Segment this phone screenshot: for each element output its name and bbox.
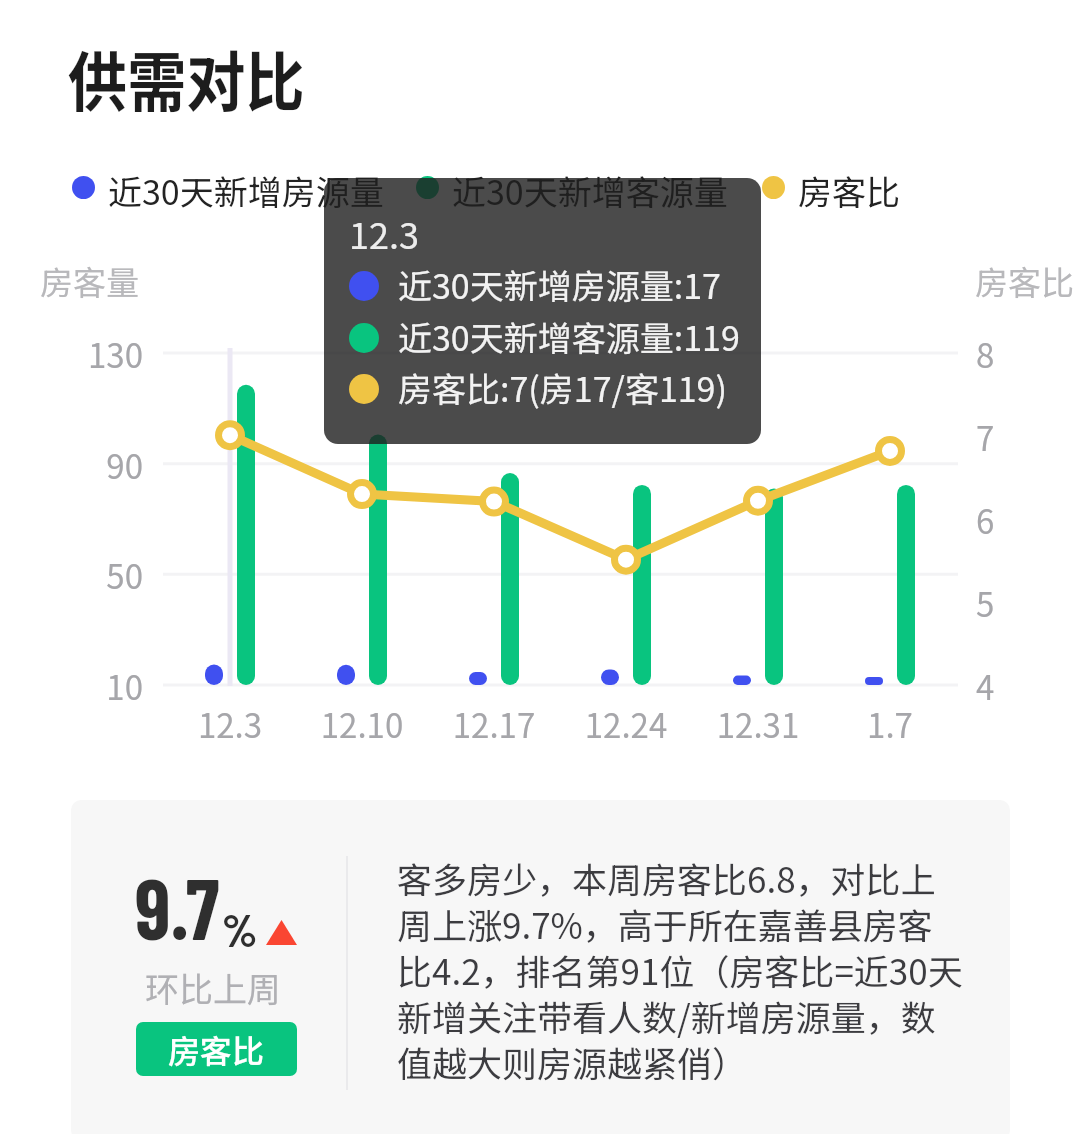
button[interactable]: 房客比: [136, 1022, 297, 1076]
staticText: 供需对比: [68, 31, 305, 125]
staticText: %: [222, 901, 258, 956]
staticText: 5: [976, 579, 995, 627]
staticText: 6: [976, 496, 995, 544]
staticText: 近30天新增客源量: [452, 166, 728, 208]
staticText: 1.7: [810, 700, 970, 748]
button[interactable]: 近30天新增客源量: [416, 166, 728, 208]
button[interactable]: 房客比: [762, 166, 900, 208]
staticText: 近30天新增客源量:119: [398, 312, 740, 358]
staticText: 房客比: [798, 166, 900, 208]
button[interactable]: 近30天新增房源量: [72, 166, 384, 208]
staticText: 近30天新增房源量: [108, 166, 384, 208]
staticText: 房客比: [975, 257, 1074, 305]
staticText: 90: [33, 441, 143, 489]
staticText: 10: [33, 662, 143, 710]
staticText: 8: [976, 330, 995, 378]
staticText: 12.17: [414, 700, 574, 748]
staticText: 12.24: [546, 700, 706, 748]
staticText: 房客量: [40, 257, 139, 305]
staticText: 7: [976, 413, 995, 461]
staticText: 12.10: [282, 700, 442, 748]
button[interactable]: 9.7: [71, 800, 1010, 1134]
staticText: 12.3: [150, 700, 310, 748]
staticText: 环比上周: [145, 963, 281, 1012]
staticText: 50: [33, 551, 143, 599]
staticText: 9.7: [135, 855, 219, 957]
staticText: 客多房少，本周房客比6.8，对比上 周上涨9.7%，高于所在嘉善县房客 比4.2…: [397, 852, 997, 1087]
staticText: 130: [33, 330, 143, 378]
staticText: 近30天新增房源量:17: [398, 260, 721, 306]
staticText: 房客比: [168, 1026, 265, 1072]
staticText: 12.31: [678, 700, 838, 748]
staticText: 4: [976, 662, 995, 710]
staticText: 12.3: [349, 207, 419, 259]
staticText: 房客比:7(房17/客119): [398, 363, 727, 409]
